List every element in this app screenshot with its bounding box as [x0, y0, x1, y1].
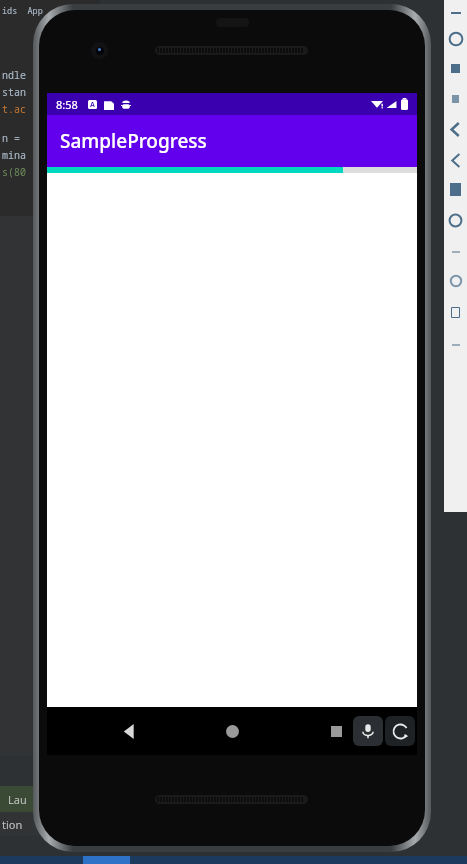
staticText: A [90, 100, 95, 109]
button[interactable]: Back [110, 712, 148, 750]
staticText: mina [2, 148, 26, 162]
staticText: ndle [2, 68, 26, 82]
button[interactable]: Recent apps [321, 716, 351, 746]
staticText: stan [2, 85, 26, 99]
staticText: 8:58 [56, 97, 78, 112]
button[interactable]: Voice input [353, 716, 383, 746]
button[interactable]: Rotate [385, 716, 415, 746]
staticText: t.ac [2, 102, 26, 116]
staticText: SampleProgress [60, 128, 207, 154]
button[interactable]: SampleProgress [47, 115, 417, 167]
button[interactable]: Home [213, 712, 251, 750]
staticText: tion [2, 817, 23, 832]
staticText: s(80 [2, 165, 26, 179]
staticText: n = [2, 131, 20, 145]
staticText: ids App [2, 5, 43, 17]
staticText: Lau [8, 792, 27, 807]
